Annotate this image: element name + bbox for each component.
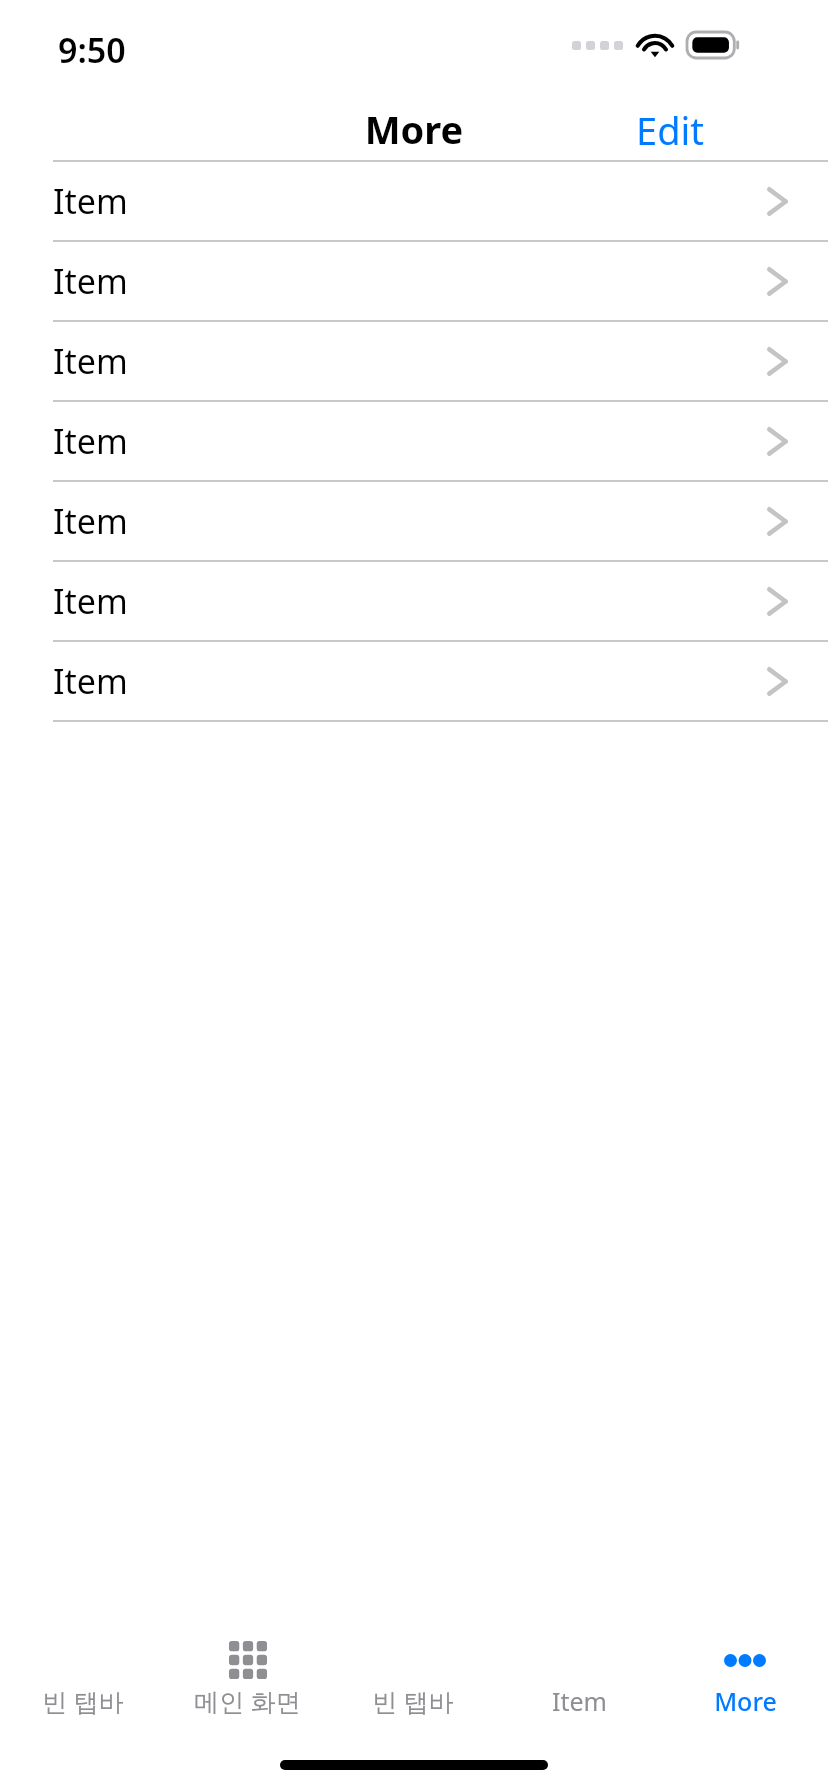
button[interactable]: 빈 탭바 bbox=[0, 1636, 165, 1736]
staticText: More bbox=[714, 1684, 777, 1718]
staticText: 메인 화면 bbox=[194, 1684, 301, 1718]
staticText: Item bbox=[53, 338, 128, 384]
staticText: Item bbox=[552, 1684, 607, 1718]
staticText: 9:50 bbox=[58, 27, 126, 73]
staticText: 빈 탭바 bbox=[42, 1684, 124, 1718]
staticText: Item bbox=[53, 178, 128, 224]
staticText: Item bbox=[53, 658, 128, 704]
button[interactable]: Item bbox=[0, 162, 828, 240]
staticText: 빈 탭바 bbox=[372, 1684, 454, 1718]
staticText: Item bbox=[53, 418, 128, 464]
staticText: Item bbox=[53, 258, 128, 304]
staticText: Edit bbox=[636, 104, 705, 156]
staticText: More bbox=[0, 103, 828, 155]
button[interactable]: 빈 탭바 bbox=[330, 1636, 496, 1736]
button[interactable]: Item bbox=[0, 562, 828, 640]
staticText: Item bbox=[53, 578, 128, 624]
button[interactable]: Item bbox=[0, 322, 828, 400]
button[interactable]: Item bbox=[0, 642, 828, 720]
button[interactable]: More bbox=[662, 1636, 828, 1736]
button[interactable]: Item bbox=[0, 402, 828, 480]
staticText: Item bbox=[53, 498, 128, 544]
button[interactable]: Item bbox=[496, 1636, 662, 1736]
button[interactable]: Edit bbox=[608, 92, 733, 168]
button[interactable]: Item bbox=[0, 242, 828, 320]
button[interactable]: Item bbox=[0, 482, 828, 560]
button[interactable]: 메인 화면 bbox=[165, 1636, 330, 1736]
